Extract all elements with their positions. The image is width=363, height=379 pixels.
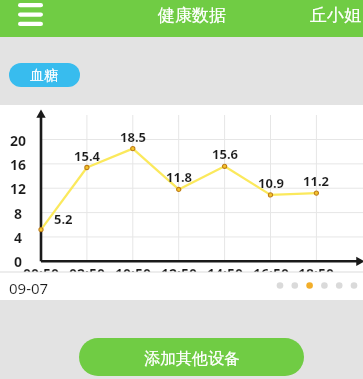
staticText: 00:50 bbox=[11, 264, 71, 272]
staticText: 添加其他设备 bbox=[144, 349, 240, 369]
staticText: 14:50 bbox=[195, 264, 255, 272]
staticText: 11.2 bbox=[291, 172, 341, 190]
staticText: 健康数据 bbox=[158, 5, 226, 26]
staticText: 12 bbox=[2, 179, 34, 198]
staticText: 20 bbox=[2, 131, 34, 150]
staticText: 09-07 bbox=[9, 278, 49, 298]
staticText: 10.9 bbox=[246, 174, 296, 192]
staticText: 8 bbox=[2, 204, 34, 223]
staticText: 血糖 bbox=[30, 67, 58, 85]
staticText: 16 bbox=[2, 155, 34, 174]
staticText: 4 bbox=[2, 228, 34, 247]
button[interactable]: 添加其他设备 bbox=[79, 338, 304, 376]
staticText: 5.2 bbox=[54, 210, 73, 228]
staticText: 18:50 bbox=[286, 264, 346, 272]
staticText: 11.8 bbox=[154, 168, 204, 186]
staticText: 15.6 bbox=[200, 145, 250, 163]
staticText: 18.5 bbox=[108, 128, 158, 146]
staticText: 10:50 bbox=[103, 264, 163, 272]
staticText: 0 bbox=[2, 252, 34, 271]
staticText: 02:50 bbox=[57, 264, 117, 272]
staticText: 15.4 bbox=[62, 147, 112, 165]
button[interactable]: Menu bbox=[0, 0, 46, 32]
staticText: 12:50 bbox=[149, 264, 209, 272]
button[interactable]: 血糖 bbox=[9, 63, 80, 87]
staticText: 16:50 bbox=[241, 264, 301, 272]
button[interactable]: 丘小姐 bbox=[310, 5, 361, 26]
